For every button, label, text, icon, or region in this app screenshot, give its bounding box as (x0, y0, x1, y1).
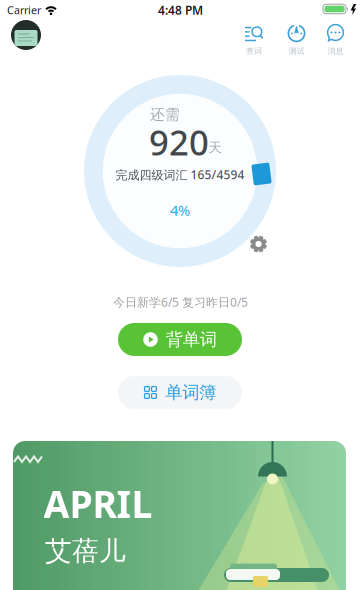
staticText: 天 (208, 139, 221, 156)
staticText: 完成四级词汇 165/4594 (115, 167, 244, 183)
staticText: 测试 (288, 46, 304, 56)
button[interactable]: 背单词 (118, 323, 242, 356)
staticText: 背单词 (166, 329, 217, 350)
staticText: 查词 (246, 46, 262, 56)
button[interactable]: Profile (11, 20, 41, 50)
staticText: APRIL (43, 479, 152, 528)
staticText: 4:48 PM (158, 2, 203, 18)
button[interactable]: April banner (13, 441, 346, 590)
staticText: 消息 (327, 46, 343, 56)
staticText: Carrier (7, 3, 41, 17)
staticText: 艾蓓儿 (45, 535, 126, 567)
staticText: 920 (149, 119, 209, 165)
button[interactable]: 消息 (317, 23, 353, 57)
staticText: 单词簿 (165, 382, 216, 403)
button[interactable]: 查词 (236, 23, 272, 57)
staticText: 还需 (150, 105, 180, 123)
staticText: 今日新学6/5 复习昨日0/5 (113, 294, 248, 310)
staticText: 4% (170, 200, 190, 220)
button[interactable]: Settings (249, 235, 267, 253)
button[interactable]: 测试 (278, 23, 314, 57)
button[interactable]: 单词簿 (118, 376, 242, 409)
